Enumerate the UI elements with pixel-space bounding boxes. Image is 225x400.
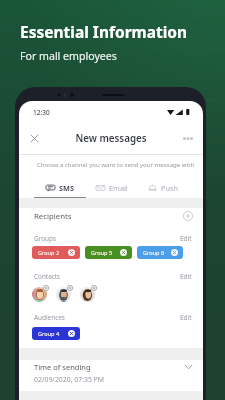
- staticText: SMS: [59, 183, 74, 193]
- staticText: Audiences: [34, 313, 65, 322]
- staticText: Time of sending: [34, 362, 91, 372]
- staticText: Group 5: [91, 249, 113, 257]
- button[interactable]: Group 6: [137, 246, 183, 259]
- staticText: 02/09/2020, 07:35 PM: [34, 375, 105, 384]
- button[interactable]: SMS: [34, 183, 86, 198]
- staticText: Essential Information: [20, 21, 188, 42]
- button[interactable]: Time of sending: [34, 361, 192, 373]
- button[interactable]: Email: [86, 183, 137, 198]
- staticText: Recipients: [34, 211, 72, 222]
- button[interactable]: More options: [172, 123, 203, 154]
- staticText: Group 4: [38, 330, 60, 338]
- staticText: Contacts: [34, 272, 61, 281]
- button[interactable]: Edit: [180, 272, 192, 281]
- button[interactable]: Contact 1: [32, 285, 49, 302]
- button[interactable]: Contact 2: [56, 285, 73, 302]
- staticText: Email: [109, 183, 128, 193]
- button[interactable]: Close: [19, 123, 50, 154]
- staticText: Push: [161, 183, 178, 193]
- staticText: Group 6: [143, 249, 165, 257]
- button[interactable]: Group 4: [32, 327, 80, 340]
- staticText: Group 2: [38, 249, 60, 257]
- staticText: For mall employees: [20, 49, 117, 63]
- button[interactable]: Edit: [180, 313, 192, 322]
- button[interactable]: Add recipient: [182, 210, 194, 222]
- button[interactable]: Contact 3: [80, 285, 97, 302]
- button[interactable]: Group 5: [85, 246, 132, 259]
- staticText: Groups: [34, 234, 56, 243]
- staticText: Choose a channel you want to send your m…: [37, 160, 195, 168]
- staticText: New messages: [50, 132, 172, 145]
- button[interactable]: Edit: [180, 234, 192, 243]
- button[interactable]: Group 2: [32, 246, 80, 259]
- button[interactable]: Push: [137, 183, 188, 198]
- staticText: 12:30: [33, 108, 50, 117]
